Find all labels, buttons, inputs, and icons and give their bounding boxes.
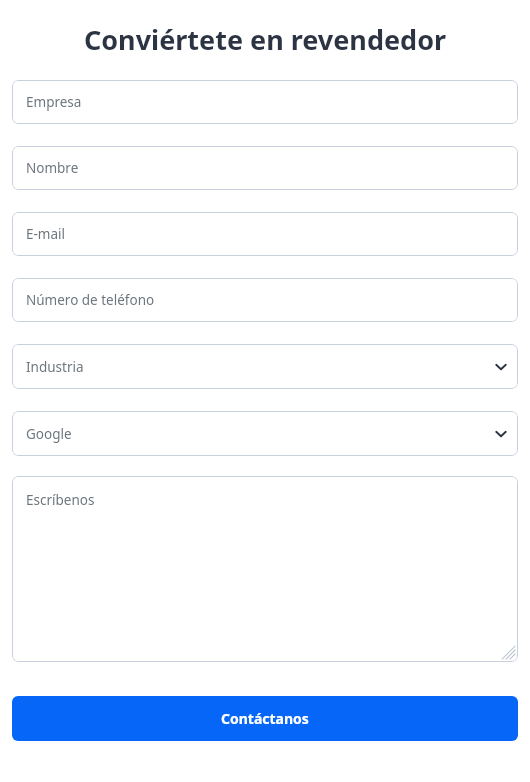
button[interactable]: Número de teléfono: [12, 278, 518, 322]
button[interactable]: Contáctanos: [12, 696, 518, 741]
staticText: Google: [26, 425, 72, 443]
staticText: Escríbenos: [26, 491, 95, 509]
button[interactable]: Google: [12, 411, 518, 456]
staticText: E-mail: [26, 225, 66, 243]
button[interactable]: Industria: [12, 344, 518, 389]
button[interactable]: Nombre: [12, 146, 518, 190]
button[interactable]: E-mail: [12, 212, 518, 256]
staticText: Contáctanos: [221, 709, 309, 728]
staticText: Industria: [26, 358, 84, 376]
staticText: Empresa: [26, 93, 82, 111]
staticText: Conviértete en revendedor: [12, 21, 518, 58]
staticText: Número de teléfono: [26, 291, 155, 309]
staticText: Nombre: [26, 159, 79, 177]
button[interactable]: Escríbenos: [12, 476, 518, 662]
button[interactable]: Empresa: [12, 80, 518, 124]
